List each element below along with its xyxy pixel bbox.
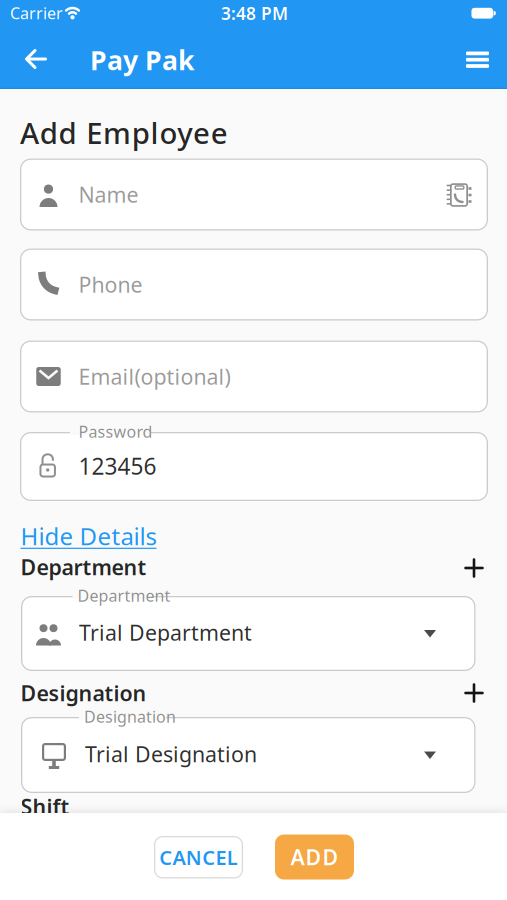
- staticText: 123456: [78, 451, 156, 481]
- staticText: Hide Details: [20, 520, 156, 552]
- button[interactable]: Select designation: [21, 710, 475, 793]
- button[interactable]: Select department: [21, 589, 475, 671]
- button[interactable]: Hide Details: [20, 522, 240, 550]
- staticText: Add Employee: [20, 113, 228, 152]
- staticText: Shift: [20, 792, 69, 821]
- button[interactable]: ADD: [275, 834, 354, 879]
- staticText: Designation: [84, 706, 176, 727]
- staticText: Trial Department: [79, 618, 252, 647]
- staticText: CANCEL: [159, 844, 238, 871]
- staticText: Name: [78, 180, 138, 209]
- button[interactable]: Pick from contacts: [436, 172, 480, 216]
- staticText: Designation: [20, 679, 146, 707]
- button[interactable]: Back: [14, 37, 58, 81]
- button[interactable]: Add department: [452, 546, 496, 590]
- staticText: Department: [77, 585, 170, 606]
- staticText: Pay Pak: [90, 42, 195, 78]
- staticText: Phone: [78, 270, 142, 299]
- staticText: Department: [20, 553, 146, 581]
- staticText: Email(optional): [78, 362, 230, 391]
- staticText: Carrier: [10, 2, 63, 24]
- button[interactable]: Add designation: [452, 671, 496, 715]
- staticText: Trial Designation: [85, 740, 257, 768]
- staticText: ADD: [290, 843, 338, 871]
- staticText: 3:48 PM: [221, 2, 288, 25]
- button[interactable]: Menu: [455, 38, 499, 82]
- staticText: Password: [78, 421, 152, 442]
- button[interactable]: CANCEL: [154, 836, 243, 878]
